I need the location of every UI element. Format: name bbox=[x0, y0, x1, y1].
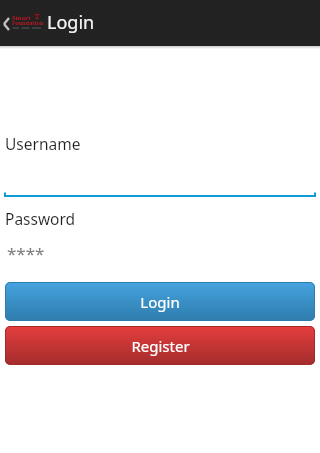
staticText: Foundation bbox=[12, 19, 44, 26]
staticText: Login bbox=[140, 292, 180, 312]
button[interactable]: Register bbox=[5, 326, 315, 365]
staticText: Username bbox=[5, 133, 81, 154]
button[interactable]: Login bbox=[5, 282, 315, 321]
staticText: Smart bbox=[12, 14, 31, 22]
button[interactable]: Username field bbox=[0, 190, 320, 200]
staticText: Login bbox=[47, 10, 95, 35]
staticText: Password bbox=[5, 208, 76, 229]
staticText: Register bbox=[131, 336, 190, 356]
staticText: **** bbox=[7, 242, 45, 265]
button[interactable]: Navigate up bbox=[2, 16, 45, 31]
button[interactable]: Password field bbox=[0, 242, 320, 265]
